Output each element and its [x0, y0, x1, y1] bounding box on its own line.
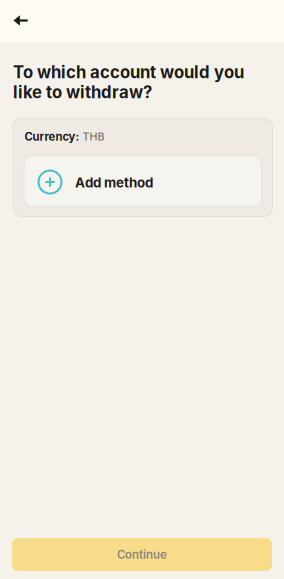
staticText: Currency:: [24, 130, 79, 143]
button[interactable]: Back: [2, 4, 40, 38]
staticText: To which account would you: [13, 62, 244, 82]
staticText: Add method: [75, 174, 153, 191]
staticText: Continue: [117, 548, 167, 561]
button[interactable]: Continue: [12, 538, 272, 571]
staticText: THB: [82, 130, 104, 143]
staticText: like to withdraw?: [13, 82, 152, 102]
button[interactable]: Add method: [24, 155, 261, 206]
